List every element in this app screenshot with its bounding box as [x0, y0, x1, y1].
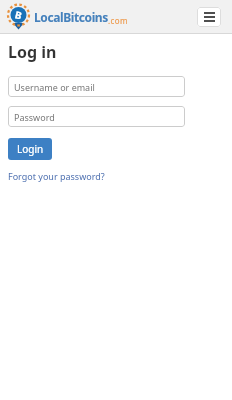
- button[interactable]: Password: [8, 106, 185, 127]
- staticText: Password: [14, 111, 55, 123]
- staticText: .com: [108, 15, 128, 26]
- staticText: Login: [17, 142, 44, 156]
- button[interactable]: Forgot your password?: [8, 170, 105, 182]
- button[interactable]: Login: [8, 138, 52, 160]
- button[interactable]: Username or email: [8, 76, 185, 97]
- staticText: LocalBitcoins: [34, 9, 108, 25]
- staticText: B: [13, 7, 24, 23]
- staticText: Log in: [8, 41, 57, 63]
- button[interactable]: [197, 7, 221, 27]
- staticText: Username or email: [14, 81, 95, 93]
